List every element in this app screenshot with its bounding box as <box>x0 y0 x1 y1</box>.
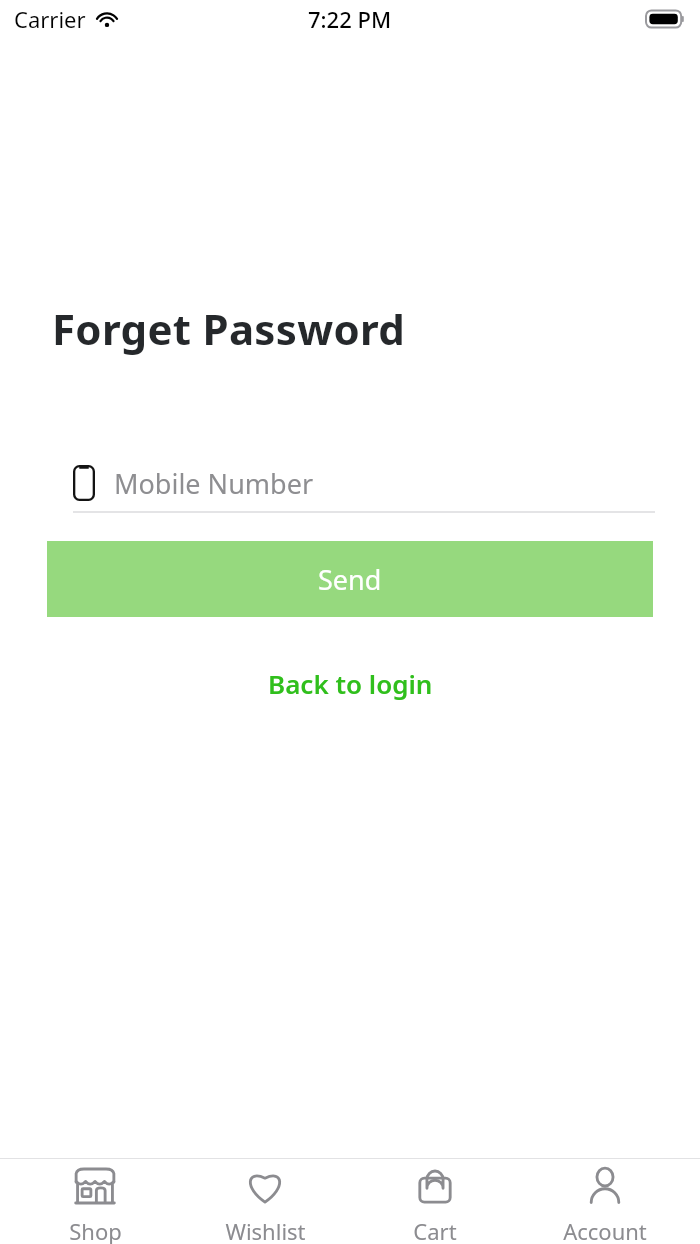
staticText: Mobile Number <box>114 465 314 502</box>
staticText: Cart <box>413 1216 457 1244</box>
staticText: Send <box>318 561 382 598</box>
staticText: Back to login <box>268 666 433 701</box>
button[interactable]: Back to login <box>248 658 453 709</box>
button[interactable]: Cart <box>360 1159 510 1244</box>
button[interactable]: Send <box>47 541 653 617</box>
staticText: Forget Password <box>52 300 406 357</box>
button[interactable]: Account <box>530 1159 680 1244</box>
staticText: Shop <box>69 1216 122 1244</box>
button[interactable]: Wishlist <box>190 1159 340 1244</box>
staticText: Carrier <box>14 4 86 34</box>
staticText: 7:22 PM <box>308 4 392 34</box>
button[interactable]: Shop <box>20 1159 170 1244</box>
staticText: Account <box>563 1216 647 1244</box>
staticText: Wishlist <box>225 1216 306 1244</box>
